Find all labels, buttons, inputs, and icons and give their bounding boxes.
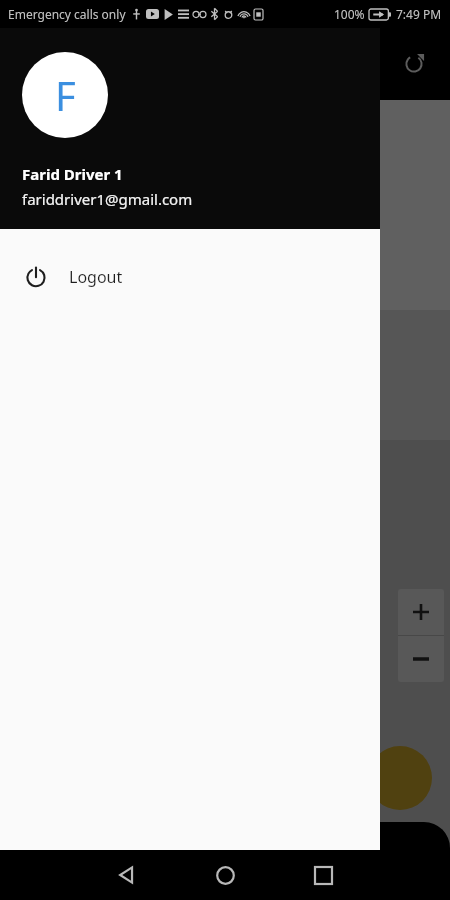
button[interactable]: Distance 7 KM	[0, 100, 450, 310]
staticText: fariddriver1@gmail.com	[22, 189, 193, 209]
staticText: 100%	[334, 6, 365, 22]
button[interactable]: Zoom in	[398, 589, 444, 635]
staticText: Farid Driver 1	[22, 164, 123, 184]
button[interactable]: Refresh	[394, 44, 434, 84]
staticText: Emergency calls only	[8, 6, 126, 22]
staticText: Distance 7 KM	[18, 134, 138, 157]
button[interactable]: Home	[195, 850, 255, 900]
button[interactable]: F	[22, 52, 108, 138]
staticText: Logout	[69, 266, 123, 288]
staticText: Price 100 $	[36, 190, 116, 210]
button[interactable]: Recent apps	[293, 850, 353, 900]
button[interactable]: Back	[97, 850, 157, 900]
staticText: F	[55, 68, 76, 122]
button[interactable]: Price 100 $	[18, 183, 348, 217]
staticText: 7:49 PM	[396, 6, 442, 22]
button[interactable]: Zoom out	[398, 636, 444, 682]
button[interactable]: Navigate	[368, 746, 432, 810]
button[interactable]: Logout	[0, 249, 380, 305]
